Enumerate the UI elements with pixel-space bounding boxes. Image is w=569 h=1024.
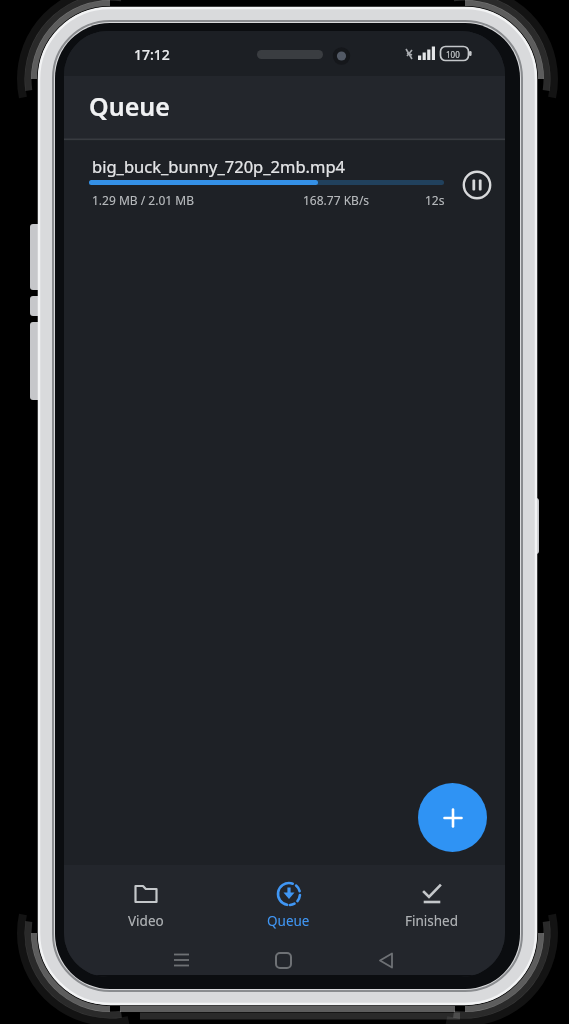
button[interactable] bbox=[418, 783, 487, 852]
button[interactable]: Finished bbox=[358, 866, 505, 938]
button[interactable] bbox=[64, 144, 505, 212]
button[interactable] bbox=[461, 169, 493, 201]
staticText: 168.77 KB/s bbox=[303, 192, 370, 208]
staticText: 17:12 bbox=[134, 45, 170, 64]
button[interactable]: Queue bbox=[215, 866, 362, 938]
staticText: Queue bbox=[267, 912, 310, 930]
staticText: Queue bbox=[89, 89, 170, 123]
staticText: 1.29 MB / 2.01 MB bbox=[92, 192, 194, 208]
button[interactable]: Video bbox=[72, 866, 219, 938]
staticText: Finished bbox=[405, 912, 459, 930]
staticText: 100 bbox=[446, 49, 460, 60]
staticText: 12s bbox=[425, 192, 445, 208]
staticText: Video bbox=[128, 912, 164, 930]
staticText: big_buck_bunny_720p_2mb.mp4 bbox=[92, 155, 345, 177]
